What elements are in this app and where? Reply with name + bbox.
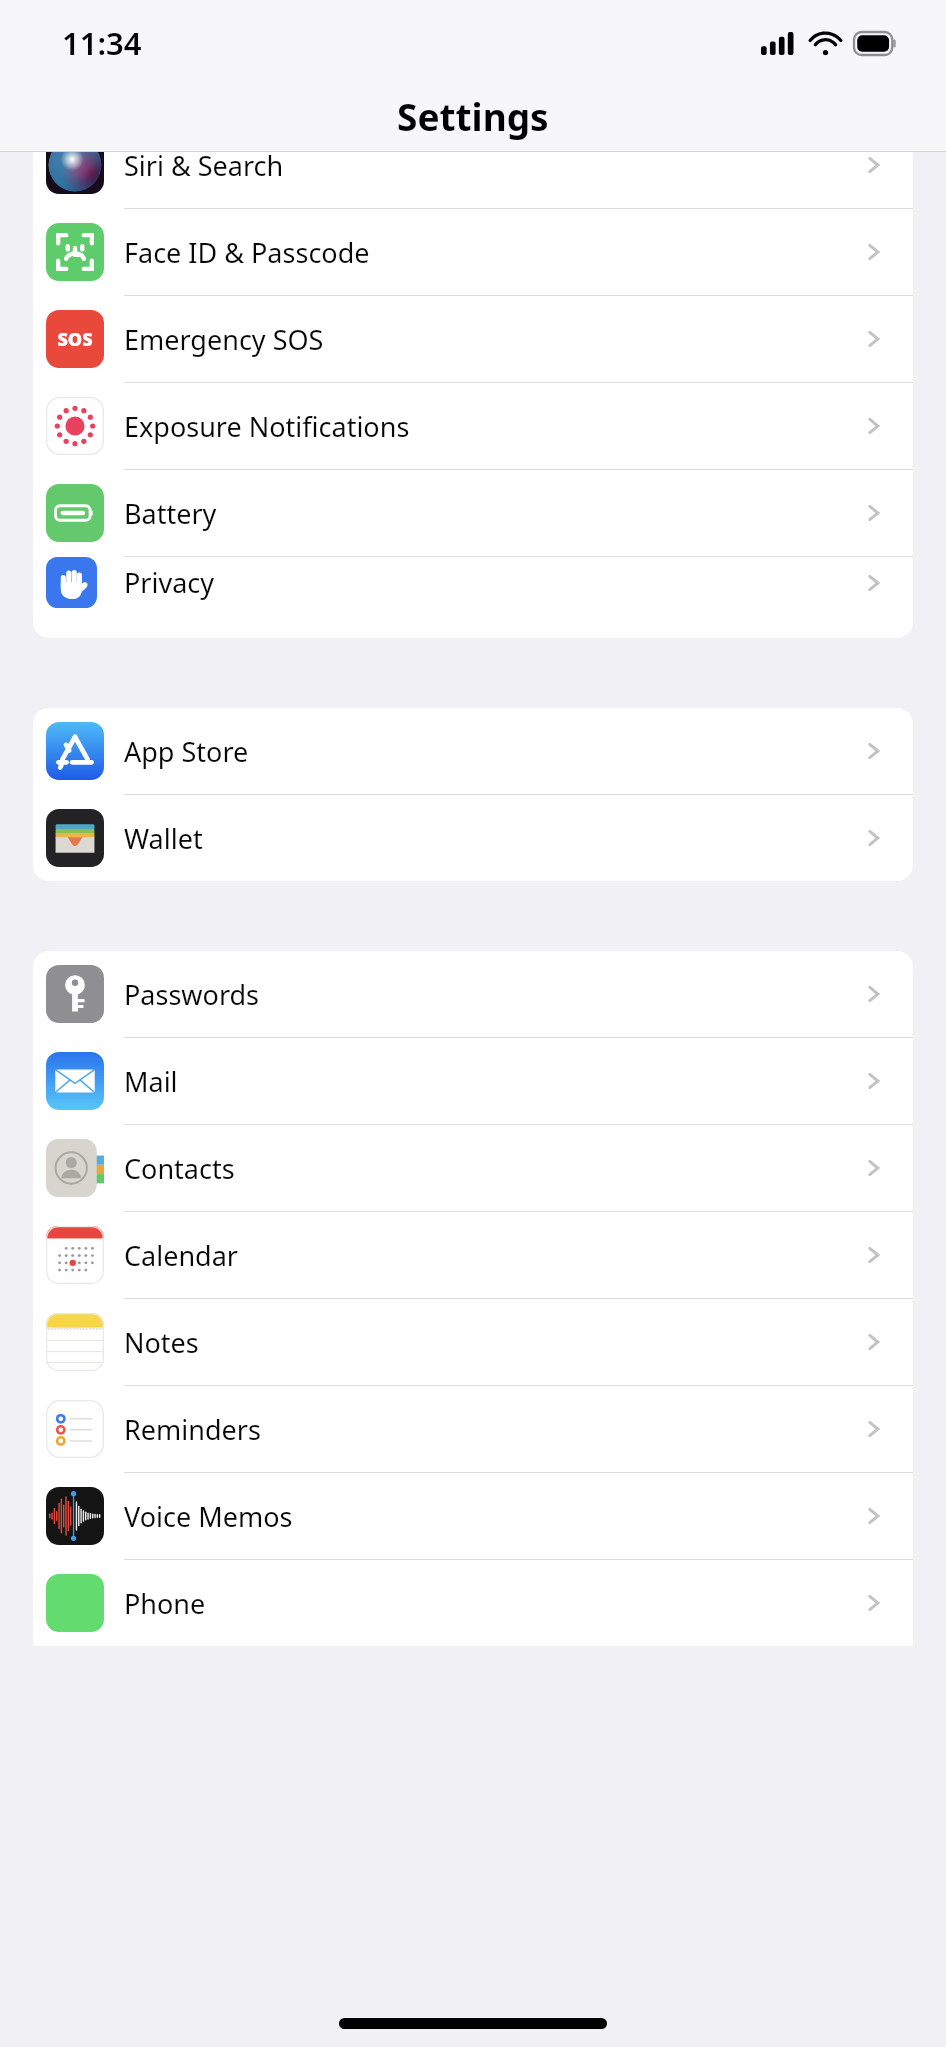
staticText: Privacy xyxy=(124,564,215,601)
button[interactable]: Calendar xyxy=(33,1212,913,1298)
button[interactable]: Exposure Notifications xyxy=(33,383,913,469)
button[interactable]: App Store xyxy=(33,708,913,794)
staticText: Reminders xyxy=(124,1411,261,1448)
button[interactable]: Privacy xyxy=(33,557,913,608)
staticText: Phone xyxy=(124,1585,206,1622)
button[interactable]: Siri & Search xyxy=(33,152,913,208)
staticText: Mail xyxy=(124,1063,178,1100)
staticText: Calendar xyxy=(124,1237,238,1274)
button[interactable]: Wallet xyxy=(33,795,913,881)
staticText: App Store xyxy=(124,733,249,770)
staticText: Settings xyxy=(397,91,549,141)
button[interactable]: Face ID & Passcode xyxy=(33,209,913,295)
staticText: Siri & Search xyxy=(124,152,284,184)
staticText: Face ID & Passcode xyxy=(124,234,370,271)
staticText: Voice Memos xyxy=(124,1498,293,1535)
button[interactable]: Reminders xyxy=(33,1386,913,1472)
button[interactable]: Notes xyxy=(33,1299,913,1385)
button[interactable]: SOS xyxy=(33,296,913,382)
staticText: Wallet xyxy=(124,820,203,857)
staticText: Emergency SOS xyxy=(124,321,324,358)
staticText: SOS xyxy=(57,327,93,352)
staticText: Passwords xyxy=(124,976,260,1013)
button[interactable]: Mail xyxy=(33,1038,913,1124)
button[interactable]: Voice Memos xyxy=(33,1473,913,1559)
button[interactable]: Battery xyxy=(33,470,913,556)
staticText: Contacts xyxy=(124,1150,235,1187)
staticText: Exposure Notifications xyxy=(124,408,410,445)
button[interactable]: Contacts xyxy=(33,1125,913,1211)
button[interactable]: Phone xyxy=(33,1560,913,1646)
staticText: Battery xyxy=(124,495,217,532)
staticText: Notes xyxy=(124,1324,199,1361)
staticText: 11:34 xyxy=(62,22,142,64)
button[interactable]: Passwords xyxy=(33,951,913,1037)
other: Home indicator xyxy=(339,2018,607,2029)
